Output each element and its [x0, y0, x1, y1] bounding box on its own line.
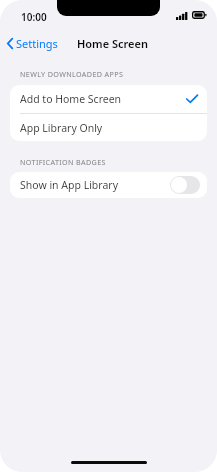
button[interactable]: App Library Only	[10, 114, 207, 141]
button[interactable]: Settings	[0, 32, 64, 54]
button[interactable]: Show in App Library	[10, 172, 207, 198]
staticText: NOTIFICATION BADGES	[20, 157, 106, 167]
staticText: NEWLY DOWNLOADED APPS	[20, 69, 124, 79]
staticText: Home Screen	[77, 36, 148, 51]
staticText: Show in App Library	[20, 178, 119, 192]
staticText: Add to Home Screen	[20, 92, 122, 106]
staticText: 10:00	[21, 10, 47, 24]
button[interactable]: Add to Home Screen	[10, 85, 207, 113]
staticText: App Library Only	[20, 121, 103, 135]
button[interactable]: Show in App Library toggle, off	[170, 176, 200, 194]
staticText: Settings	[16, 36, 58, 51]
